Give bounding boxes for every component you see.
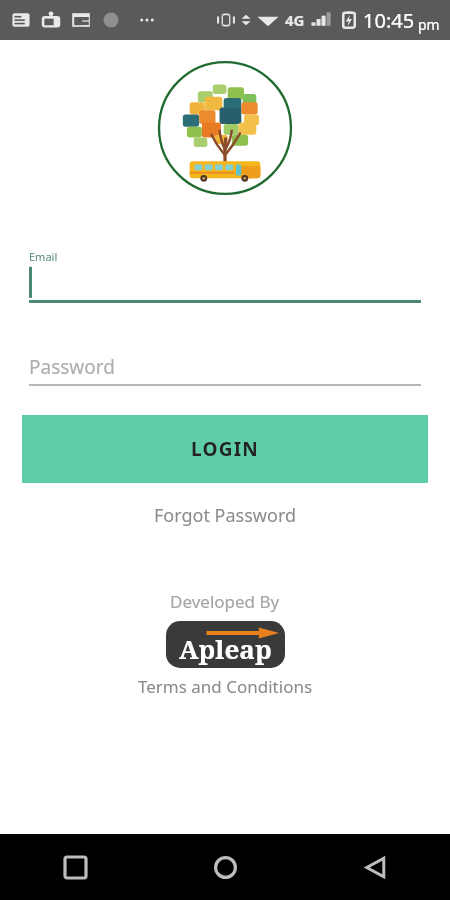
button[interactable]: Recent apps xyxy=(0,834,150,900)
button[interactable]: Password xyxy=(29,350,421,384)
staticText: Apleap xyxy=(179,631,272,666)
staticText: pm xyxy=(418,15,440,34)
button[interactable]: Forgot Password xyxy=(142,499,309,532)
button[interactable]: Back xyxy=(300,834,450,900)
staticText: Developed By xyxy=(170,590,280,613)
staticText: 10:45 xyxy=(363,7,415,34)
staticText: Password xyxy=(29,354,115,380)
button[interactable]: Apleap xyxy=(166,621,285,668)
button[interactable]: Terms and Conditions xyxy=(126,673,325,700)
staticText: LOGIN xyxy=(191,436,259,462)
staticText: Email xyxy=(29,249,58,264)
staticText: Forgot Password xyxy=(154,503,297,528)
staticText: 4G xyxy=(285,10,305,30)
button[interactable]: LOGIN xyxy=(22,415,428,483)
button[interactable]: Home xyxy=(150,834,300,900)
button[interactable] xyxy=(29,264,421,300)
staticText: Terms and Conditions xyxy=(138,675,313,698)
